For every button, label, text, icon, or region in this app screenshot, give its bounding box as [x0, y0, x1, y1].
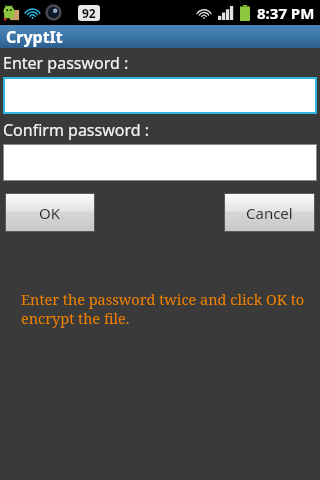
staticText: OK	[39, 203, 61, 223]
staticText: Enter password :	[3, 52, 129, 74]
staticText: Confirm password :	[3, 119, 150, 141]
staticText: 92	[82, 5, 96, 21]
staticText: Cancel	[246, 203, 293, 223]
staticText: 8:37 PM	[257, 3, 315, 23]
button[interactable]: Cancel	[225, 194, 314, 231]
staticText: CryptIt	[6, 26, 63, 48]
staticText: Enter the password twice and click OK to…	[21, 289, 312, 328]
button[interactable]: OK	[6, 194, 94, 231]
